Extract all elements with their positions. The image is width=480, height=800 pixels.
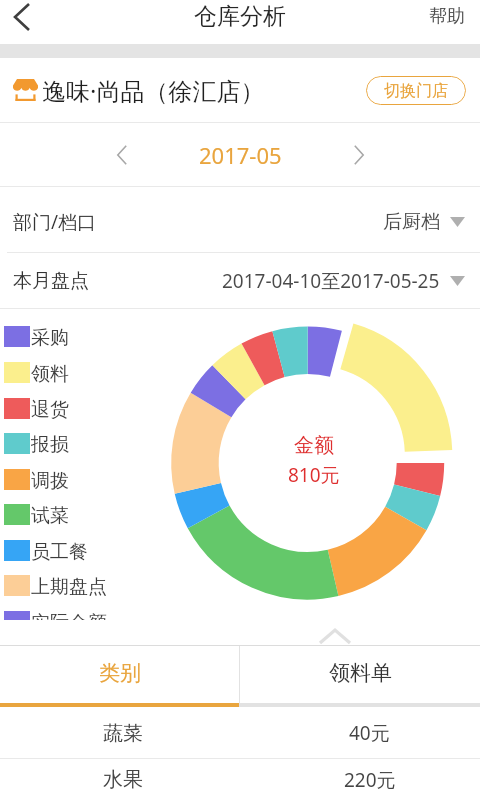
button[interactable]: 试菜 (4, 504, 69, 525)
button[interactable]: 报损 (4, 433, 69, 454)
staticText: 220元 (344, 767, 396, 793)
button[interactable]: 切换门店 (366, 76, 466, 105)
staticText: 蔬菜 (103, 721, 143, 746)
button[interactable]: 领料单 (240, 646, 480, 707)
staticText: 切换门店 (384, 81, 448, 101)
staticText: 领料 (31, 362, 69, 383)
button[interactable]: 领料 (4, 362, 69, 383)
button[interactable]: 类别 (0, 646, 239, 707)
staticText: 类别 (99, 660, 141, 686)
button[interactable]: 员工餐 (4, 540, 88, 561)
staticText: 部门/档口 (13, 209, 97, 235)
staticText: 试菜 (31, 504, 69, 525)
button[interactable]: 退货 (4, 398, 69, 419)
button[interactable]: 逸味·尚品（徐汇店） (0, 58, 480, 122)
staticText: 金额 (294, 433, 334, 458)
button[interactable]: 帮助 (429, 0, 465, 33)
staticText: 仓库分析 (194, 2, 286, 31)
staticText: 退货 (31, 398, 69, 419)
button[interactable]: Next month (337, 123, 381, 186)
staticText: 上期盘点 (31, 575, 107, 596)
button[interactable]: 本月盘点 (0, 253, 480, 308)
staticText: 40元 (349, 720, 390, 746)
staticText: 领料单 (329, 660, 392, 686)
staticText: 实际金额 (31, 611, 107, 620)
staticText: 810元 (288, 462, 340, 488)
staticText: 后厨档 (383, 210, 440, 234)
staticText: 调拨 (31, 469, 69, 490)
staticText: 逸味·尚品（徐汇店） (42, 74, 265, 107)
button[interactable]: Back (0, 0, 44, 33)
button[interactable]: 实际金额 (4, 611, 107, 620)
button[interactable]: 上期盘点 (4, 575, 107, 596)
staticText: 员工餐 (31, 540, 88, 561)
staticText: 水果 (103, 767, 143, 792)
staticText: 2017-05 (199, 140, 282, 170)
button[interactable]: 部门/档口 (0, 187, 480, 252)
staticText: 报损 (31, 433, 69, 454)
staticText: 本月盘点 (13, 269, 89, 293)
staticText: 采购 (31, 326, 69, 347)
button[interactable]: 水果 (0, 759, 480, 800)
staticText: 帮助 (429, 5, 465, 28)
button[interactable]: Previous month (100, 123, 144, 186)
button[interactable]: 调拨 (4, 469, 69, 490)
button[interactable]: 采购 (4, 326, 69, 347)
staticText: 2017-04-10至2017-05-25 (222, 268, 440, 294)
button[interactable]: 蔬菜 (0, 708, 480, 758)
